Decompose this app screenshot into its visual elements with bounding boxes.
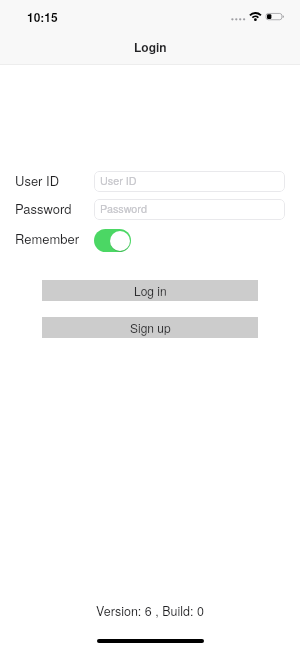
staticText: Log in (134, 282, 167, 299)
button[interactable]: Sign up (42, 317, 258, 338)
button[interactable]: User ID input field (94, 171, 285, 192)
staticText: Password (15, 199, 72, 218)
staticText: Password (100, 201, 147, 216)
staticText: 10:15 (27, 8, 58, 25)
button[interactable]: Remember me, on (94, 229, 131, 252)
staticText: User ID (15, 171, 60, 190)
staticText: User ID (100, 173, 137, 188)
other: Signal, Wi-Fi and battery status (0, 0, 300, 32)
staticText: Remember (15, 229, 80, 248)
staticText: Sign up (130, 319, 171, 336)
button[interactable]: Log in (42, 280, 258, 301)
staticText: Login (134, 38, 167, 55)
staticText: Version: 6 , Build: 0 (0, 602, 300, 620)
button[interactable]: Password input field (94, 199, 285, 220)
